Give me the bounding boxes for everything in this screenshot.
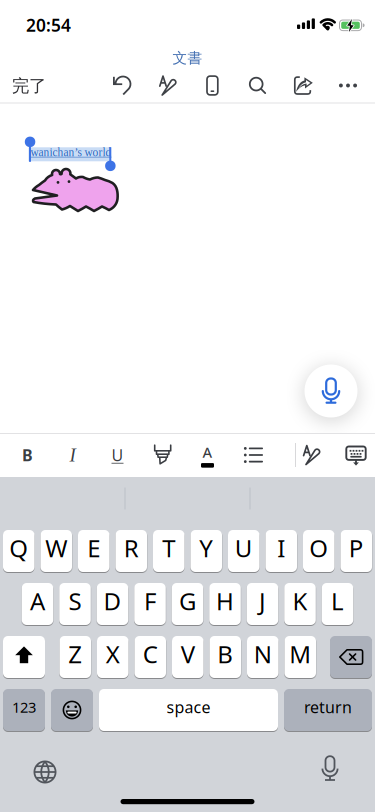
staticText: Z bbox=[68, 638, 82, 670]
button[interactable]: L bbox=[322, 583, 353, 625]
button[interactable]: R bbox=[115, 530, 147, 572]
staticText: return bbox=[304, 696, 352, 718]
button[interactable]: Undo bbox=[99, 65, 145, 105]
button[interactable]: Ink bbox=[288, 433, 333, 477]
button[interactable]: U bbox=[228, 530, 259, 572]
button[interactable]: Highlight bbox=[140, 433, 185, 477]
button[interactable]: space bbox=[99, 689, 278, 731]
button[interactable]: Mobile view bbox=[190, 65, 235, 105]
staticText: M bbox=[289, 638, 311, 670]
button[interactable]: K bbox=[284, 583, 316, 625]
staticText: 完了 bbox=[12, 75, 46, 97]
button[interactable]: T bbox=[153, 530, 184, 572]
button[interactable]: Shift bbox=[3, 636, 45, 678]
button[interactable]: I bbox=[265, 530, 297, 572]
button[interactable]: return bbox=[284, 689, 372, 731]
staticText: 123 bbox=[12, 697, 36, 717]
button[interactable]: O bbox=[303, 530, 334, 572]
button[interactable]: Search bbox=[235, 65, 280, 105]
button[interactable]: Bold bbox=[5, 433, 50, 477]
staticText: R bbox=[124, 532, 139, 564]
staticText: space bbox=[166, 696, 210, 718]
staticText: V bbox=[181, 638, 195, 670]
button[interactable]: Y bbox=[190, 530, 222, 572]
staticText: U bbox=[111, 444, 123, 466]
button[interactable]: P bbox=[340, 530, 372, 572]
button[interactable]: Dictate bbox=[304, 364, 357, 417]
staticText: U bbox=[235, 532, 253, 564]
button[interactable]: Next keyboard bbox=[23, 750, 67, 794]
staticText: B bbox=[217, 638, 233, 670]
button[interactable]: Delete bbox=[330, 636, 372, 678]
button[interactable]: Z bbox=[59, 636, 91, 678]
staticText: P bbox=[349, 532, 364, 564]
staticText: A bbox=[30, 585, 45, 617]
staticText: I bbox=[277, 532, 285, 564]
button[interactable]: F bbox=[134, 583, 166, 625]
button[interactable]: 完了 bbox=[0, 66, 68, 106]
staticText: K bbox=[292, 585, 307, 617]
button[interactable]: A bbox=[22, 583, 53, 625]
button[interactable]: Ink annotation bbox=[145, 65, 190, 105]
staticText: B bbox=[22, 444, 33, 466]
button[interactable]: H bbox=[209, 583, 241, 625]
button[interactable]: 123 bbox=[3, 689, 45, 731]
button[interactable]: Dictation bbox=[308, 749, 352, 793]
staticText: O bbox=[309, 532, 328, 564]
button[interactable]: E bbox=[78, 530, 109, 572]
staticText: D bbox=[103, 585, 121, 617]
button[interactable]: S bbox=[59, 583, 91, 625]
staticText: W bbox=[45, 532, 67, 564]
button[interactable]: D bbox=[97, 583, 128, 625]
staticText: J bbox=[259, 585, 266, 617]
staticText: T bbox=[162, 532, 175, 564]
staticText: X bbox=[106, 638, 120, 670]
staticText: L bbox=[331, 585, 344, 617]
staticText: 20:54 bbox=[26, 13, 71, 36]
button[interactable]: Underline bbox=[95, 433, 140, 477]
button[interactable]: N bbox=[247, 636, 278, 678]
staticText: wanichan’s world bbox=[30, 146, 111, 159]
button[interactable]: More bbox=[325, 65, 371, 105]
button[interactable]: Bullets bbox=[230, 433, 275, 477]
staticText: N bbox=[254, 638, 272, 670]
button[interactable]: Italic bbox=[50, 433, 95, 477]
button[interactable]: Share bbox=[280, 65, 325, 105]
button[interactable]: G bbox=[172, 583, 203, 625]
staticText: S bbox=[68, 585, 81, 617]
button[interactable]: B bbox=[209, 636, 241, 678]
staticText: Y bbox=[199, 532, 213, 564]
staticText: G bbox=[179, 585, 196, 617]
button[interactable]: M bbox=[284, 636, 316, 678]
staticText: C bbox=[143, 638, 158, 670]
button[interactable]: Font color bbox=[185, 433, 230, 477]
staticText: 文書 bbox=[172, 49, 202, 67]
button[interactable]: Q bbox=[3, 530, 34, 572]
staticText: H bbox=[216, 585, 234, 617]
button[interactable]: X bbox=[97, 636, 128, 678]
button[interactable]: Emoji bbox=[51, 689, 93, 731]
button[interactable]: Hide keyboard bbox=[333, 433, 375, 477]
staticText: E bbox=[87, 532, 100, 564]
staticText: Q bbox=[9, 532, 28, 564]
staticText: F bbox=[144, 585, 156, 617]
button[interactable]: V bbox=[172, 636, 203, 678]
staticText: I bbox=[69, 444, 75, 465]
button[interactable]: J bbox=[247, 583, 278, 625]
staticText: A bbox=[202, 442, 212, 462]
button[interactable]: C bbox=[134, 636, 166, 678]
button[interactable]: W bbox=[40, 530, 72, 572]
